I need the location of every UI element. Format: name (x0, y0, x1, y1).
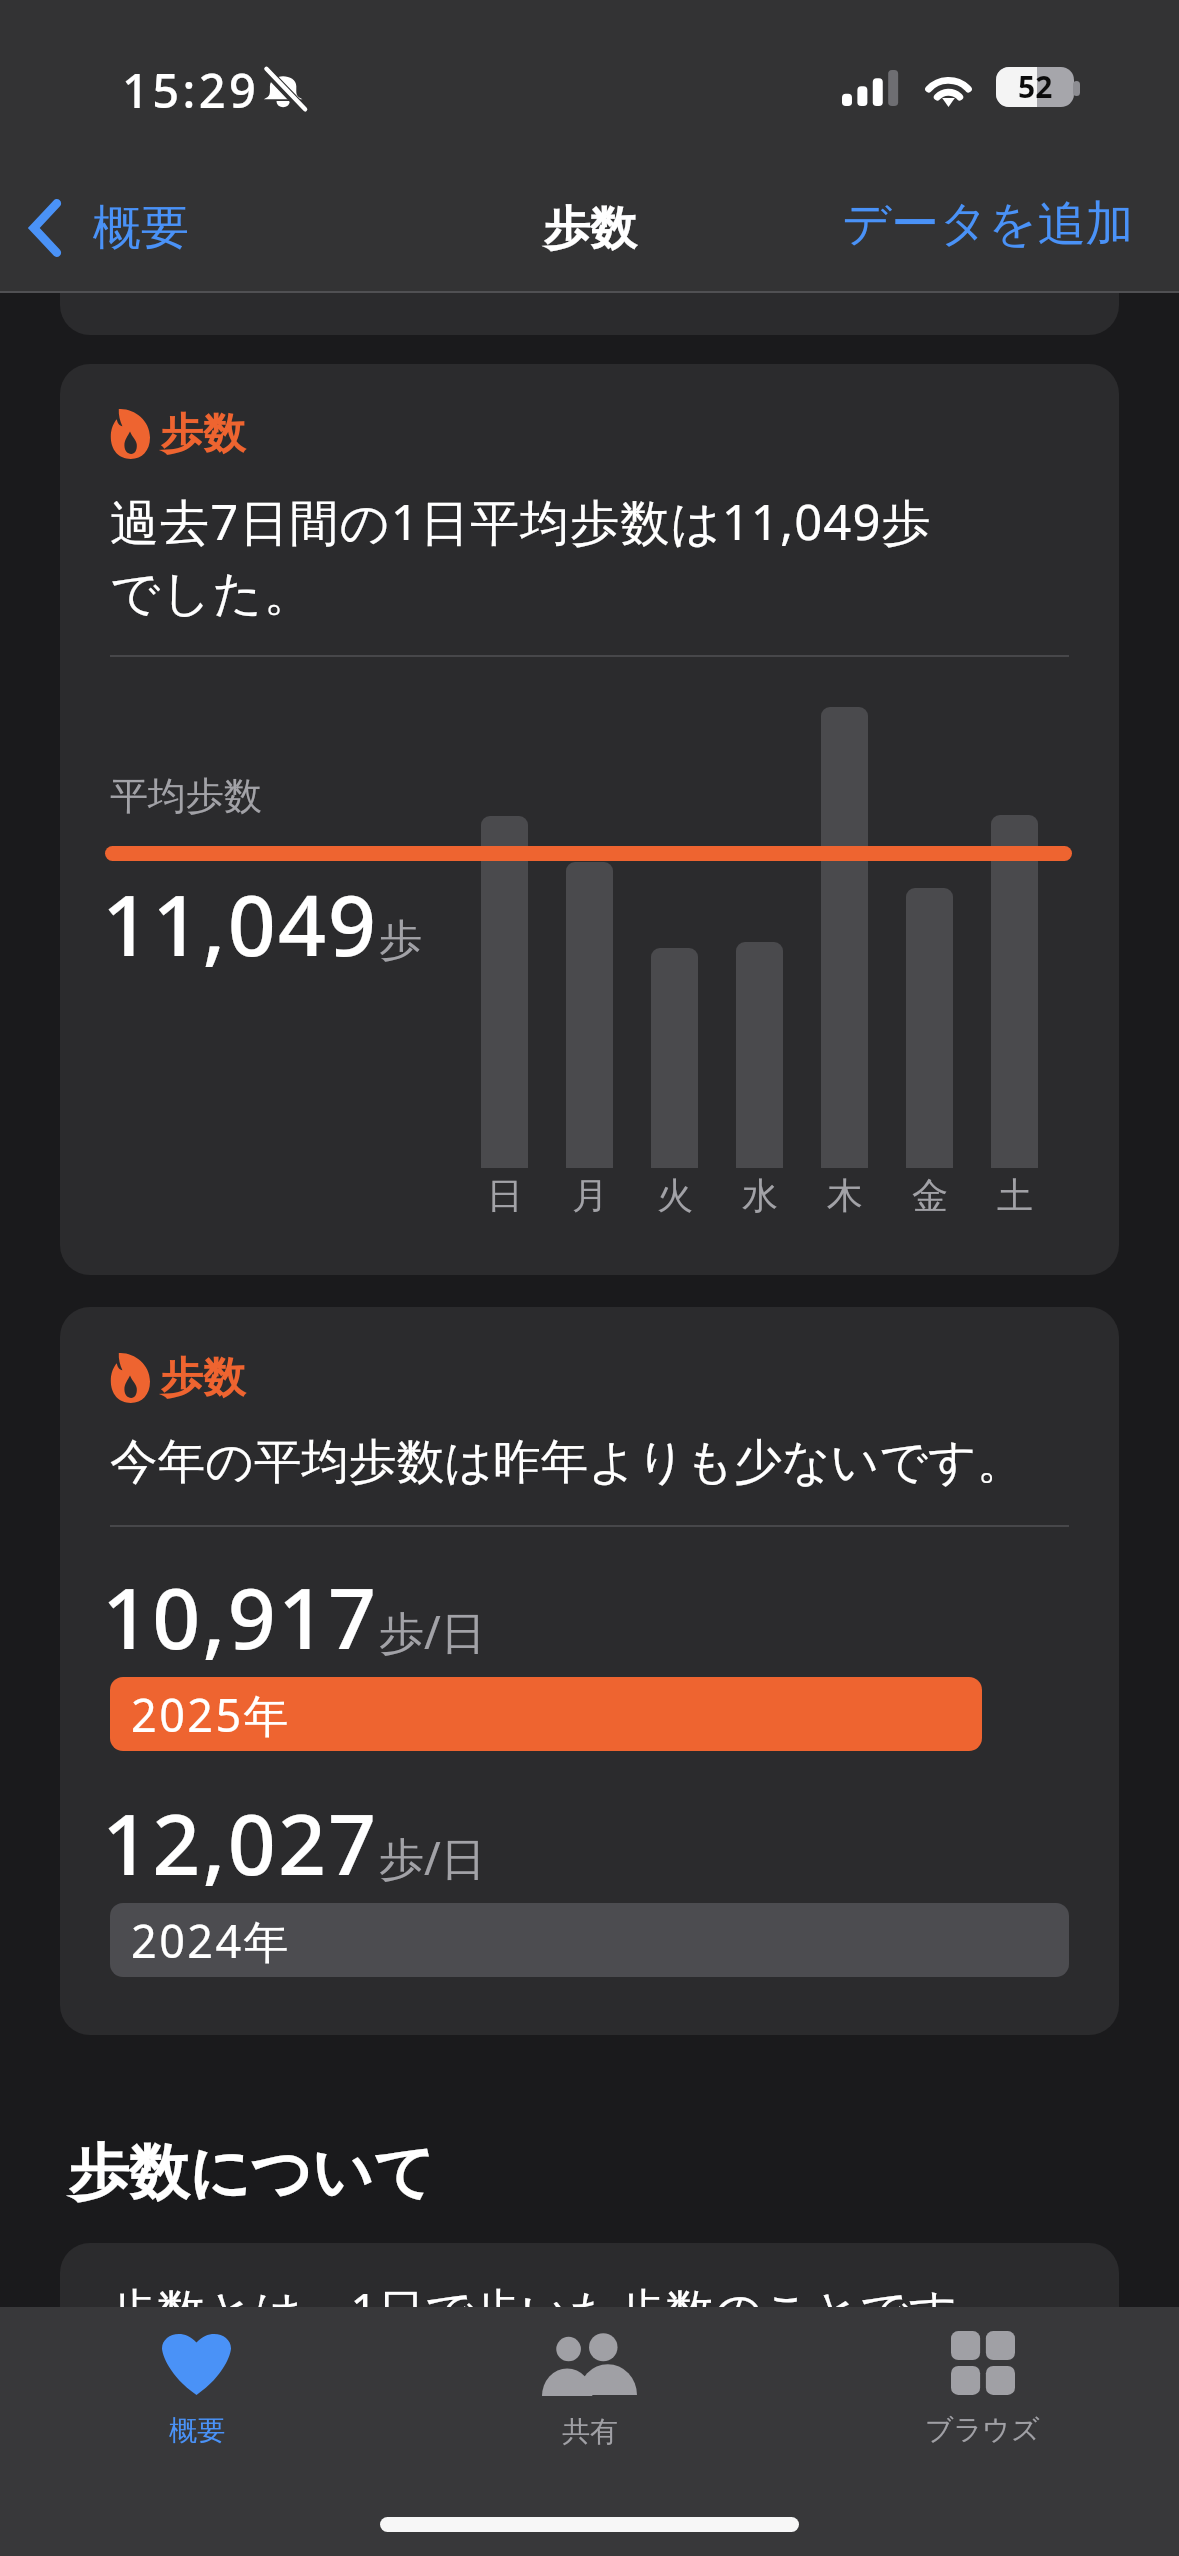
staticText: 木 (827, 1173, 863, 1218)
staticText: 歩数 (544, 200, 636, 258)
staticText: 過去7日間の1日平均歩数は11,049歩 でした。 (110, 488, 932, 624)
staticText: 概要 (169, 2413, 225, 2448)
staticText: 概要 (93, 198, 189, 258)
staticText: 10,917 (102, 1559, 379, 1673)
staticText: 15:29 (122, 58, 260, 122)
staticText: 土 (997, 1173, 1033, 1218)
staticText: 月 (572, 1173, 608, 1218)
button[interactable]: 歩数 (60, 1307, 1119, 2035)
staticText: 11,049 (102, 866, 379, 980)
button[interactable]: データを追加 (797, 178, 1179, 270)
staticText: 歩数とは、1日で歩いた歩数のことです。 (110, 2277, 1006, 2342)
button[interactable]: Summary (0, 2307, 393, 2448)
staticText: 火 (657, 1173, 693, 1218)
staticText: 歩数について (69, 2135, 435, 2211)
staticText: 今年の平均歩数は昨年よりも少ないです。 (110, 1432, 1025, 1492)
staticText: 共有 (562, 2414, 618, 2449)
staticText: 2025年 (131, 1684, 291, 1745)
staticText: 金 (912, 1173, 948, 1218)
button[interactable]: 歩数とは、1日で歩いた歩数のことです。 (60, 2243, 1119, 2443)
staticText: ブラウズ (925, 2412, 1040, 2447)
staticText: 歩 (379, 914, 422, 968)
button[interactable]: 歩数 (60, 364, 1119, 1275)
button[interactable]: Browse (786, 2307, 1179, 2447)
staticText: 水 (742, 1173, 778, 1218)
staticText: 歩/日 (379, 1827, 486, 1888)
staticText: 52 (1018, 67, 1053, 106)
button[interactable]: 概要 (0, 184, 205, 272)
staticText: 日 (487, 1173, 523, 1218)
staticText: 歩数 (161, 1352, 245, 1405)
button[interactable]: Sharing (393, 2307, 786, 2449)
staticText: 歩/日 (379, 1601, 486, 1662)
staticText: 平均歩数 (110, 772, 262, 820)
staticText: 歩数 (161, 408, 245, 461)
staticText: 2024年 (131, 1910, 291, 1971)
staticText: 12,027 (102, 1785, 379, 1899)
